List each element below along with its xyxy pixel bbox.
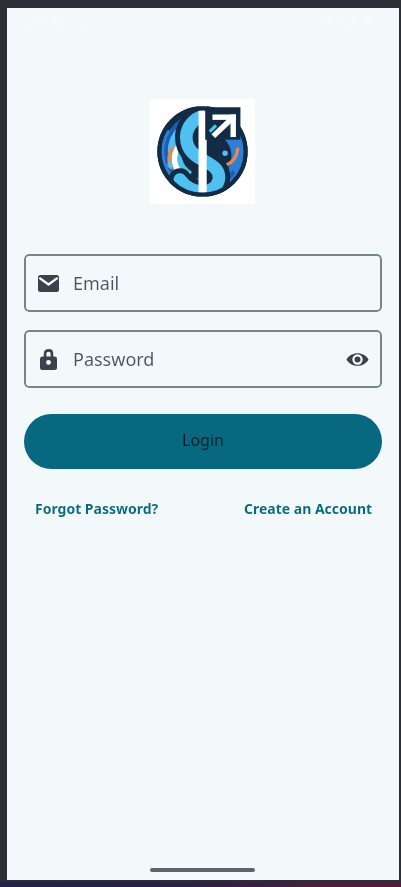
staticText: Create an Account [244, 499, 373, 518]
button[interactable]: Password [24, 330, 382, 388]
button[interactable]: Login [24, 414, 382, 469]
staticText: Password [73, 347, 155, 372]
button[interactable]: Create an Account [244, 496, 373, 521]
button[interactable]: Forgot Password? [35, 496, 159, 521]
staticText: Forgot Password? [35, 499, 159, 518]
staticText: Email [73, 271, 120, 296]
button[interactable]: Show password [346, 348, 369, 370]
staticText: Login [182, 429, 224, 451]
button[interactable]: Email [24, 254, 382, 312]
